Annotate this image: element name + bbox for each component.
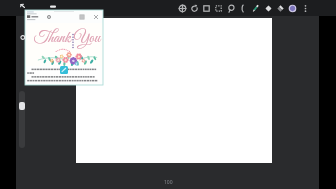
- staticText: 100: [164, 179, 173, 186]
- button[interactable]: Smudge: [237, 2, 249, 14]
- button[interactable]: Brush size: [19, 91, 25, 148]
- button[interactable]: Fullscreen: [77, 12, 86, 21]
- staticText: Thank You: [34, 28, 112, 48]
- button[interactable]: Marquee: [212, 2, 224, 14]
- button[interactable]: Eraser: [262, 2, 274, 14]
- button[interactable]: Blend: [274, 2, 286, 14]
- button[interactable]: Select: [200, 2, 212, 14]
- button[interactable]: Rotate: [44, 12, 53, 21]
- button[interactable]: Brush: [249, 2, 261, 14]
- button[interactable]: Play video: [60, 66, 68, 74]
- button[interactable]: Transform: [176, 2, 188, 14]
- button[interactable]: Redo: [188, 2, 200, 14]
- button[interactable]: More options: [299, 2, 311, 14]
- button[interactable]: Colour: [286, 2, 298, 14]
- button[interactable]: Zoom level: [164, 179, 173, 186]
- button[interactable]: Close: [91, 12, 100, 21]
- button[interactable]: Lasso: [225, 2, 237, 14]
